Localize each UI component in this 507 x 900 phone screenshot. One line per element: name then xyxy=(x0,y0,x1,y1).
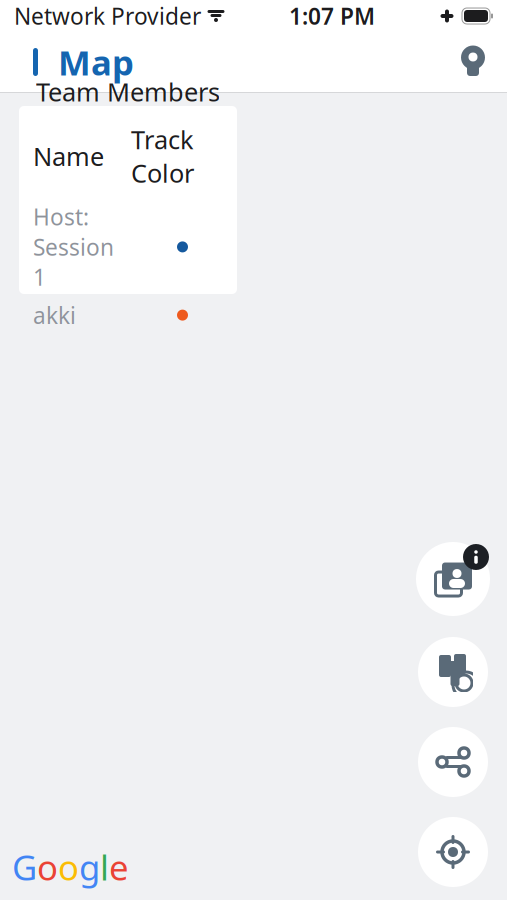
staticText: o xyxy=(58,844,79,890)
staticText: Map xyxy=(58,39,134,85)
staticText: l xyxy=(100,844,109,890)
staticText: G xyxy=(12,844,37,890)
staticText: Team Members xyxy=(36,75,220,108)
staticText: o xyxy=(37,844,58,890)
button[interactable]: Map pin xyxy=(447,32,499,92)
staticText: akki xyxy=(33,300,76,330)
staticText: g xyxy=(79,844,100,890)
staticText: Host: Session 1 xyxy=(33,202,114,292)
button[interactable]: Satellite view xyxy=(418,637,488,707)
staticText: Track Color xyxy=(131,122,194,190)
staticText: 1:07 PM xyxy=(289,1,375,31)
button[interactable]: Back xyxy=(8,32,54,92)
staticText: e xyxy=(109,844,129,890)
button[interactable]: Team members info xyxy=(415,541,491,617)
staticText: Name xyxy=(33,139,104,173)
staticText: Network Provider xyxy=(14,1,201,31)
button[interactable]: My location xyxy=(418,817,488,887)
button[interactable]: Share xyxy=(418,727,488,797)
